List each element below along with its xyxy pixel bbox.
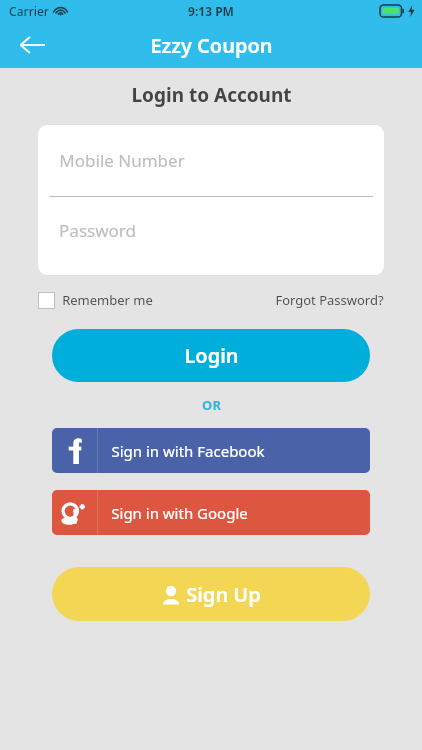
button[interactable]: Login bbox=[52, 329, 370, 382]
button[interactable]: Mobile Number bbox=[38, 125, 384, 196]
staticText: Sign Up bbox=[186, 581, 261, 608]
staticText: Remember me bbox=[62, 291, 153, 309]
staticText: Login to Account bbox=[131, 82, 292, 108]
staticText: Password bbox=[59, 219, 136, 242]
staticText: Ezzy Coupon bbox=[150, 32, 273, 59]
button[interactable]: Back bbox=[10, 23, 54, 67]
staticText: Mobile Number bbox=[59, 149, 185, 172]
staticText: Sign in with Facebook bbox=[111, 441, 265, 461]
button[interactable]: Sign in with Google bbox=[52, 490, 370, 535]
staticText: Sign in with Google bbox=[111, 503, 248, 523]
button[interactable]: Forgot Password? bbox=[275, 291, 384, 309]
button[interactable]: Remember me bbox=[38, 291, 153, 309]
staticText: Carrier bbox=[9, 3, 49, 19]
staticText: OR bbox=[202, 396, 221, 414]
staticText: Login bbox=[184, 342, 239, 369]
button[interactable]: Sign Up bbox=[52, 567, 370, 621]
staticText: 9:13 PM bbox=[188, 3, 234, 19]
button[interactable]: Password bbox=[38, 197, 384, 275]
staticText: Forgot Password? bbox=[275, 291, 384, 309]
button[interactable]: Sign in with Facebook bbox=[52, 428, 370, 473]
